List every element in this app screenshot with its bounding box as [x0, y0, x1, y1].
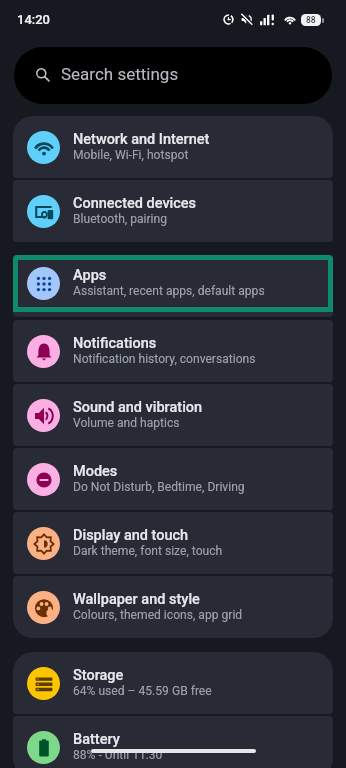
- staticText: Bluetooth, pairing: [73, 212, 168, 226]
- staticText: Notification history, conversations: [73, 352, 256, 366]
- staticText: Storage: [73, 667, 124, 684]
- button[interactable]: Apps: [13, 255, 333, 317]
- button[interactable]: Display and touch: [13, 512, 333, 574]
- staticText: 88% - Until 11:30: [73, 748, 163, 762]
- staticText: Search settings: [61, 64, 179, 84]
- button[interactable]: Notifications: [13, 320, 333, 382]
- staticText: Apps: [73, 267, 107, 284]
- staticText: Battery: [73, 731, 120, 748]
- button[interactable]: Network and Internet: [13, 116, 333, 178]
- button[interactable]: Battery: [13, 716, 333, 768]
- staticText: Modes: [73, 463, 118, 480]
- staticText: Display and touch: [73, 527, 189, 544]
- button[interactable]: Search settings: [14, 47, 332, 104]
- staticText: Do Not Disturb, Bedtime, Driving: [73, 480, 245, 494]
- staticText: Colours, themed icons, app grid: [73, 608, 243, 622]
- staticText: Volume and haptics: [73, 416, 180, 430]
- button[interactable]: Wallpaper and style: [13, 576, 333, 638]
- staticText: Wallpaper and style: [73, 591, 200, 608]
- staticText: Network and Internet: [73, 131, 210, 148]
- staticText: 14:20: [17, 12, 50, 27]
- staticText: Notifications: [73, 335, 157, 352]
- button[interactable]: Connected devices: [13, 180, 333, 242]
- staticText: 88: [306, 15, 316, 25]
- button[interactable]: Sound and vibration: [13, 384, 333, 446]
- staticText: Sound and vibration: [73, 399, 203, 416]
- staticText: 64% used – 45.59 GB free: [73, 684, 212, 698]
- staticText: Assistant, recent apps, default apps: [73, 284, 265, 298]
- staticText: Dark theme, font size, touch: [73, 544, 223, 558]
- staticText: Connected devices: [73, 195, 197, 212]
- button[interactable]: Storage: [13, 652, 333, 714]
- staticText: Mobile, Wi-Fi, hotspot: [73, 148, 189, 162]
- button[interactable]: Modes: [13, 448, 333, 510]
